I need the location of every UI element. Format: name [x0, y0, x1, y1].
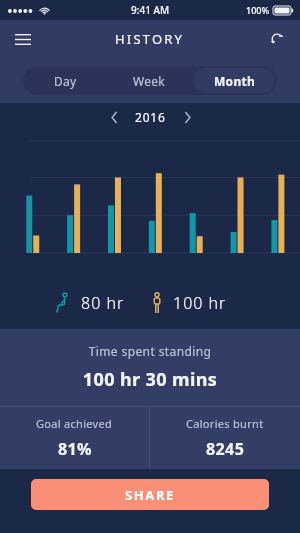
staticText: 81% — [58, 438, 92, 460]
button[interactable]: Next year — [176, 106, 198, 128]
staticText: 80 hr — [81, 292, 125, 314]
button[interactable]: Menu — [6, 22, 40, 56]
button[interactable]: Month — [194, 68, 275, 93]
staticText: Goal achieved — [36, 416, 113, 431]
button[interactable]: Day — [25, 68, 105, 93]
button[interactable]: SHARE — [31, 479, 269, 510]
button[interactable]: Week — [109, 68, 190, 93]
staticText: 2016 — [135, 109, 166, 125]
staticText: 100% — [246, 4, 270, 16]
button[interactable]: Previous year — [103, 106, 125, 128]
staticText: 8245 — [206, 438, 245, 460]
staticText: Week — [133, 73, 166, 89]
button[interactable]: Refresh — [260, 22, 294, 56]
staticText: HISTORY — [115, 30, 185, 48]
staticText: Month — [214, 73, 256, 89]
button[interactable]: Goal achieved — [0, 407, 149, 469]
staticText: Day — [54, 73, 77, 89]
staticText: 100 hr 30 mins — [0, 367, 300, 392]
button[interactable]: Calories burnt — [150, 407, 300, 469]
staticText: Calories burnt — [186, 416, 264, 431]
staticText: Time spent standing — [0, 343, 300, 359]
staticText: 100 hr — [173, 292, 227, 314]
staticText: 9:41 AM — [131, 3, 170, 17]
staticText: SHARE — [125, 486, 175, 504]
